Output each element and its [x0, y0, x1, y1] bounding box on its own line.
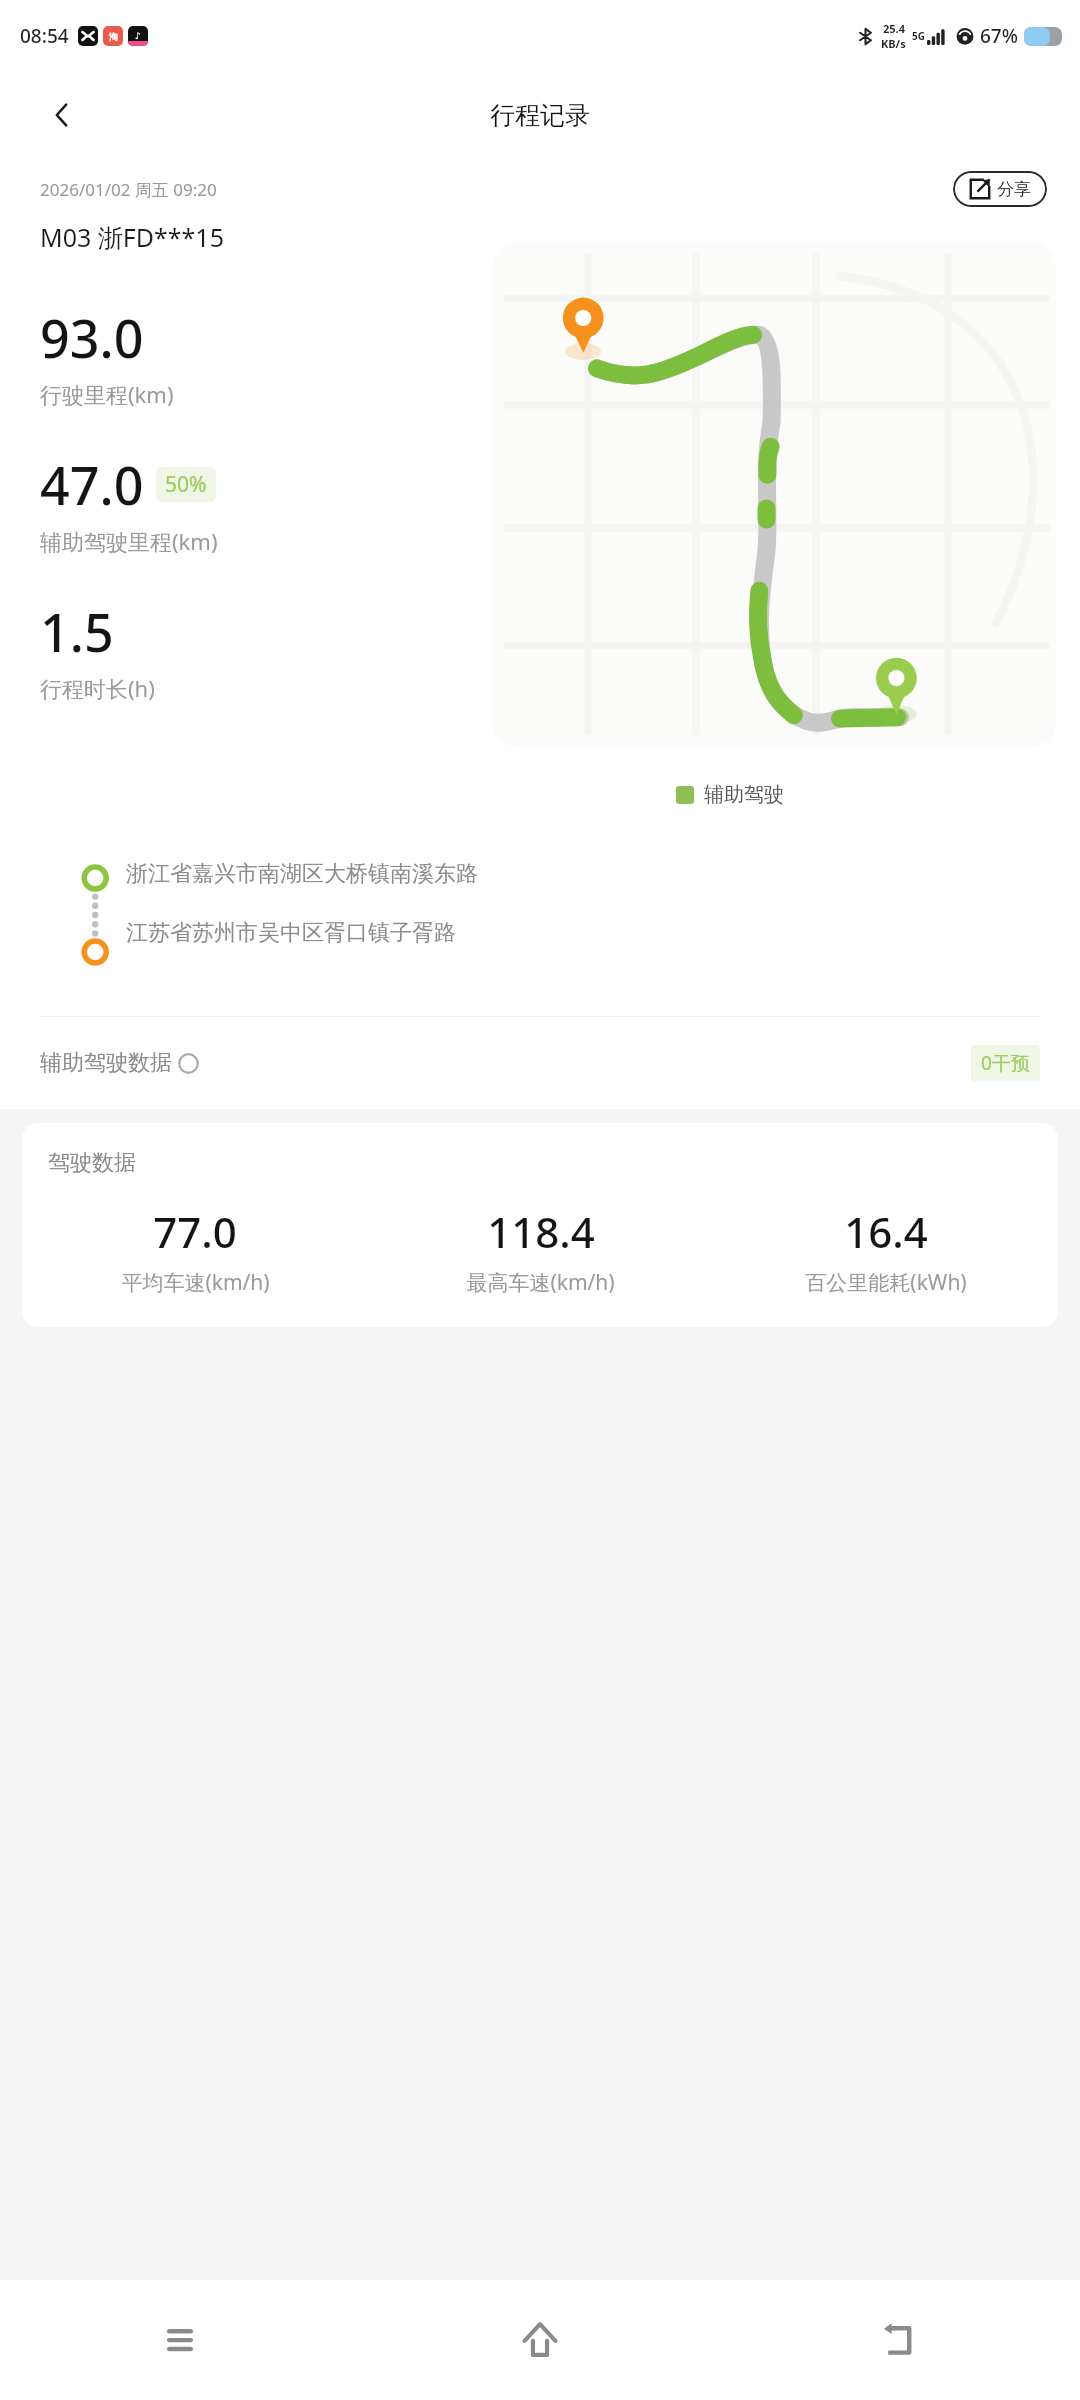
- staticText: 最高车速(km/h): [466, 1268, 615, 1297]
- staticText: 47.0: [40, 449, 144, 520]
- staticText: 江苏省苏州市吴中区胥口镇子胥路: [126, 919, 456, 947]
- staticText: 2026/01/02 周五 09:20: [40, 178, 217, 201]
- button[interactable]: Back: [720, 2280, 1080, 2400]
- staticText: 08:54: [20, 23, 69, 49]
- staticText: 行程记录: [490, 100, 590, 131]
- staticText: KB/s: [881, 36, 906, 51]
- staticText: 分享: [997, 179, 1031, 200]
- staticText: 50%: [165, 470, 207, 499]
- staticText: ♪: [135, 31, 141, 41]
- button[interactable]: Recent apps: [0, 2280, 360, 2400]
- staticText: 1.5: [40, 596, 114, 667]
- staticText: 淘: [109, 31, 118, 42]
- staticText: 16.4: [844, 1203, 928, 1260]
- staticText: 77.0: [153, 1203, 237, 1260]
- staticText: 0干预: [981, 1050, 1030, 1076]
- staticText: 百公里能耗(kWh): [805, 1268, 967, 1297]
- staticText: 93.0: [40, 302, 144, 373]
- staticText: 浙江省嘉兴市南湖区大桥镇南溪东路: [126, 860, 478, 888]
- button[interactable]: 分享: [953, 171, 1047, 207]
- staticText: 118.4: [487, 1203, 595, 1260]
- staticText: 平均车速(km/h): [121, 1268, 270, 1297]
- staticText: 5G: [912, 29, 925, 43]
- button[interactable]: 辅助驾驶数据: [0, 1017, 1080, 1109]
- button[interactable]: Back: [38, 91, 86, 139]
- staticText: 驾驶数据: [48, 1149, 136, 1177]
- staticText: 25.4: [883, 21, 905, 36]
- staticText: M03 浙FD***15: [40, 220, 224, 254]
- staticText: 行驶里程(km): [40, 379, 174, 409]
- staticText: 67%: [980, 23, 1018, 49]
- staticText: 辅助驾驶: [704, 782, 784, 807]
- button[interactable]: Home: [360, 2280, 720, 2400]
- staticText: 辅助驾驶里程(km): [40, 526, 218, 556]
- staticText: 行程时长(h): [40, 673, 155, 703]
- staticText: 辅助驾驶数据: [40, 1049, 172, 1077]
